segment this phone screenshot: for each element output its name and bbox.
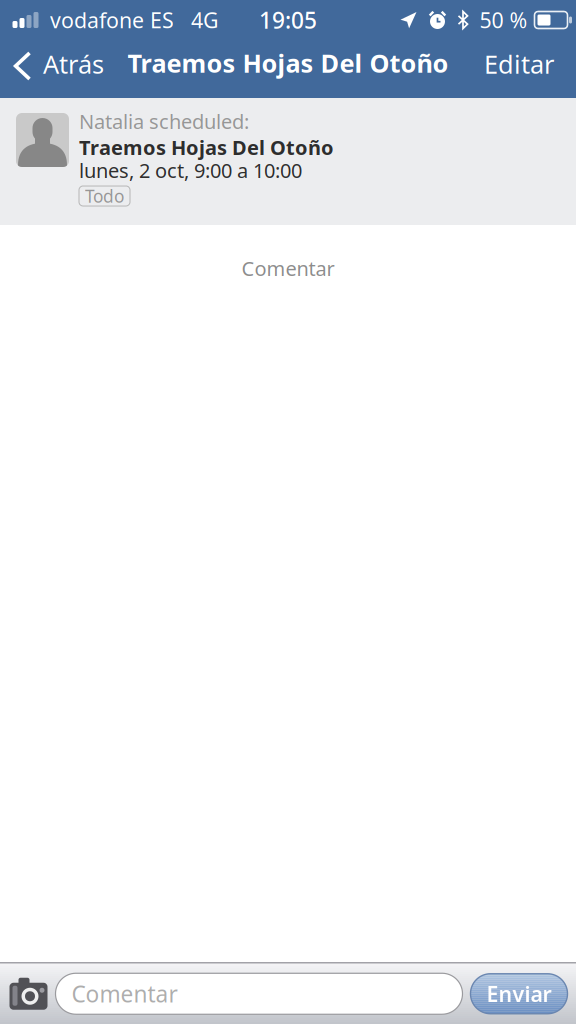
button[interactable]: Enviar [470,974,576,1014]
staticText: Traemos Hojas Del Otoño [127,46,448,80]
button[interactable]: Atrás [0,40,116,98]
staticText: vodafone ES [50,6,174,34]
staticText: Enviar [486,980,551,1008]
staticText: Natalia scheduled: [79,108,249,135]
button[interactable]: Editar [472,40,576,98]
staticText: Editar [484,47,554,81]
staticText: 19:05 [259,5,317,35]
staticText: Comentar [71,979,177,1009]
staticText: Atrás [43,47,104,81]
button[interactable]: Comentar [55,973,462,1014]
staticText: Todo [85,184,124,207]
staticText: lunes, 2 oct, 9:00 a 10:00 [79,157,302,184]
staticText: Comentar [241,255,334,282]
staticText: 50 % [479,6,527,34]
staticText: 4G [191,6,219,34]
button[interactable]: Adjuntar foto [0,964,55,1024]
staticText: Traemos Hojas Del Otoño [79,134,334,161]
